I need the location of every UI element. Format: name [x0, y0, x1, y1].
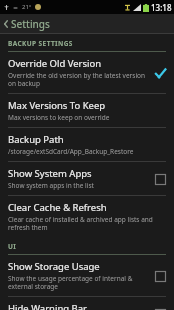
button[interactable]: Override Old Version — [0, 52, 174, 93]
staticText: Clear cache of installed & archived app … — [8, 215, 168, 232]
button[interactable]: Show Storage Usage, not checked — [152, 268, 168, 284]
button[interactable]: Show System Apps, not checked — [152, 171, 168, 187]
button[interactable]: Max Versions To Keep — [0, 94, 174, 127]
staticText: Override the old version by the latest v… — [8, 71, 148, 88]
staticText: 21° — [22, 3, 32, 11]
staticText: Show system apps in the list — [8, 181, 94, 190]
staticText: Show System Apps — [8, 167, 92, 180]
staticText: Override Old Version — [8, 57, 102, 70]
button[interactable]: Clear Cache & Refresh — [0, 196, 174, 237]
button[interactable]: Override Old Version, checked — [152, 65, 168, 81]
staticText: Max Versions To Keep — [8, 99, 106, 112]
staticText: Max versions to keep on override — [8, 113, 110, 122]
button[interactable]: Show Storage Usage — [0, 255, 174, 296]
staticText: Clear Cache & Refresh — [8, 201, 107, 214]
staticText: 13:18 — [151, 2, 172, 13]
button[interactable]: Backup Path — [0, 128, 174, 161]
staticText: BACKUP SETTINGS — [8, 39, 73, 48]
staticText: Settings — [11, 17, 50, 31]
staticText: Backup Path — [8, 133, 64, 146]
staticText: Show Storage Usage — [8, 260, 100, 273]
button[interactable]: Hide Warning Bar, not checked — [152, 306, 168, 310]
staticText: ≈ — [13, 4, 19, 11]
staticText: Hide Warning Bar — [8, 302, 87, 310]
staticText: UI — [8, 242, 17, 251]
staticText: /storage/extSdCard/App_Backup_Restore — [8, 147, 134, 156]
button[interactable]: Show System Apps — [0, 162, 174, 195]
staticText: Show the usage percentage of internal & … — [8, 274, 148, 291]
button[interactable]: Up, Settings — [0, 14, 174, 34]
button[interactable]: Hide Warning Bar — [0, 297, 174, 310]
